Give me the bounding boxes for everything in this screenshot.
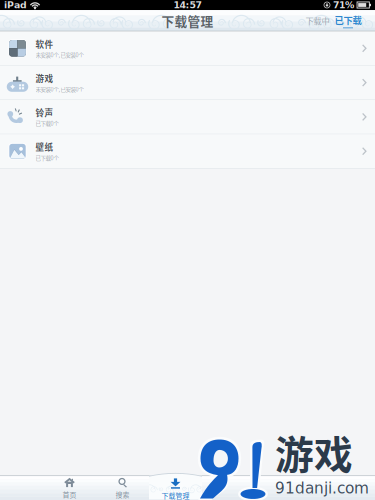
staticText: 未安装0个,已安装0个: [35, 85, 83, 93]
button[interactable]: 已下载: [332, 13, 364, 28]
staticText: 下载中: [305, 15, 329, 27]
staticText: 搜索: [115, 489, 129, 499]
button[interactable]: 下载管理: [149, 472, 202, 500]
button[interactable]: 搜索: [96, 474, 149, 498]
staticText: 14:57: [173, 0, 201, 10]
staticText: 软件: [35, 38, 53, 50]
staticText: 已下载: [334, 13, 361, 27]
staticText: 已下载0个: [35, 154, 58, 162]
staticText: 91danji.com: [275, 479, 369, 497]
button[interactable]: 首页: [43, 474, 96, 498]
staticText: 壁纸: [35, 141, 53, 153]
button[interactable]: 铃声: [0, 100, 375, 134]
staticText: 铃声: [35, 106, 53, 119]
button[interactable]: 壁纸: [0, 134, 375, 169]
staticText: 71%: [333, 0, 354, 10]
staticText: 未安装0个,已安装0个: [35, 51, 83, 59]
staticText: 游戏: [275, 424, 353, 480]
staticText: 游戏: [35, 72, 53, 84]
staticText: 首页: [62, 489, 76, 499]
button[interactable]: 游戏: [0, 66, 375, 100]
button[interactable]: 下载中: [303, 15, 332, 27]
button[interactable]: 软件: [0, 31, 375, 66]
staticText: 已下载0个: [35, 119, 58, 127]
staticText: 下载管理: [161, 491, 189, 500]
staticText: iPad: [4, 0, 27, 10]
staticText: 下载管理: [161, 12, 213, 30]
